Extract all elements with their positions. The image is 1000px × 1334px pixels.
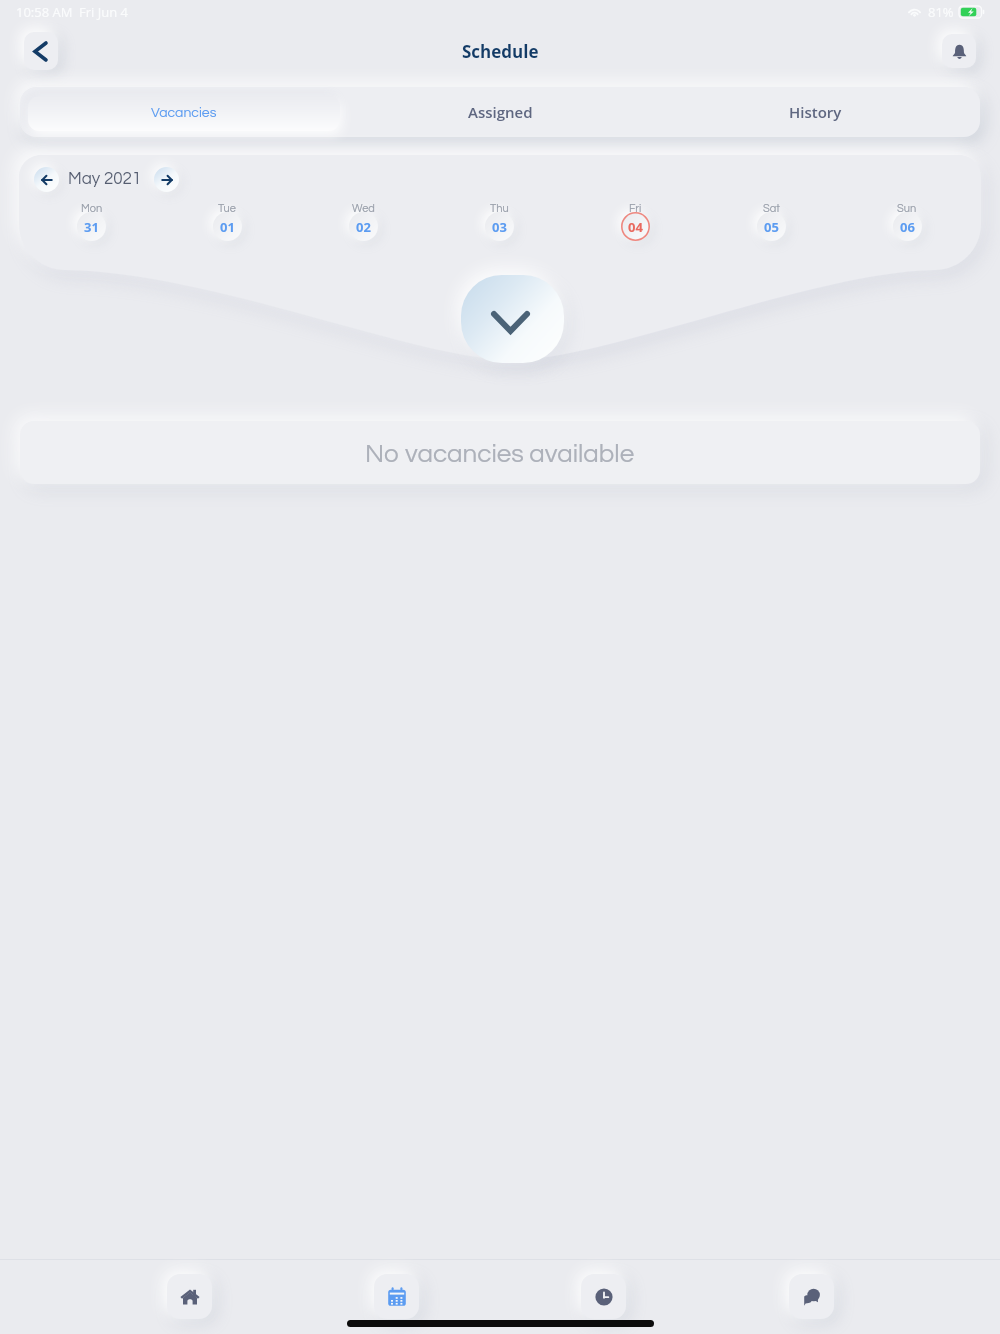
- staticText: May 2021: [68, 170, 142, 188]
- staticText: Sun: [897, 203, 917, 214]
- button[interactable]: Messages: [789, 1274, 834, 1319]
- staticText: 10:58 AM: [16, 3, 73, 21]
- button[interactable]: History: [581, 1274, 626, 1319]
- staticText: 04: [628, 218, 643, 236]
- staticText: 06: [900, 218, 915, 236]
- staticText: 31: [84, 218, 99, 236]
- button[interactable]: Home: [167, 1274, 212, 1319]
- button[interactable]: Schedule: [374, 1274, 419, 1319]
- staticText: 02: [356, 218, 371, 236]
- button[interactable]: 06: [839, 201, 975, 251]
- button[interactable]: 02: [295, 201, 431, 251]
- staticText: Mon: [81, 203, 103, 214]
- staticText: No vacancies available: [365, 441, 635, 468]
- button[interactable]: 05: [703, 201, 839, 251]
- button[interactable]: Vacancies: [28, 96, 340, 131]
- button[interactable]: 31: [24, 201, 159, 251]
- button[interactable]: Notifications: [942, 34, 976, 68]
- button[interactable]: Back: [24, 32, 58, 70]
- button[interactable]: History: [665, 87, 965, 137]
- button[interactable]: 03: [431, 201, 567, 251]
- staticText: 81%: [928, 3, 954, 21]
- staticText: Vacancies: [151, 106, 217, 120]
- staticText: Schedule: [462, 40, 539, 63]
- staticText: Thu: [490, 203, 509, 214]
- button[interactable]: 04: [567, 201, 703, 251]
- button[interactable]: Expand calendar: [461, 275, 564, 363]
- staticText: Tue: [218, 203, 236, 214]
- button[interactable]: Assigned: [350, 87, 650, 137]
- staticText: Sat: [763, 203, 780, 214]
- staticText: Assigned: [468, 102, 533, 122]
- staticText: Fri: [629, 203, 642, 214]
- button[interactable]: Next month: [154, 167, 179, 192]
- staticText: Fri Jun 4: [79, 3, 128, 21]
- staticText: 01: [220, 218, 235, 236]
- staticText: History: [789, 102, 842, 122]
- staticText: Wed: [352, 203, 375, 214]
- staticText: 03: [492, 218, 507, 236]
- button[interactable]: Previous month: [34, 167, 59, 192]
- button[interactable]: 01: [159, 201, 295, 251]
- staticText: 05: [764, 218, 779, 236]
